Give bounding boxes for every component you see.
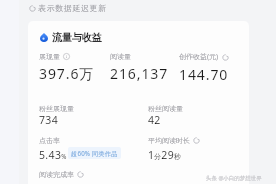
staticText: 头条 @小白的梦想世界 [206,174,262,182]
staticText: 5.43% [39,148,67,162]
button[interactable]: 平均阅读时长 [148,136,200,162]
other: 刷新 [193,137,200,144]
button[interactable]: 粉丝展现量 [39,104,74,127]
button[interactable]: 阅读量 [110,52,169,83]
staticText: 阅读量 [110,52,131,61]
staticText: 点击率 [39,136,60,145]
staticText: 平均阅读时长 [148,136,190,145]
staticText: 超60% 同类作品 [71,149,118,157]
button[interactable]: 粉丝阅读量 [148,104,183,127]
staticText: 42 [148,113,161,127]
staticText: 1分29秒 [148,148,182,162]
staticText: 734 [39,113,59,127]
other: 刷新 [29,5,36,12]
staticText: 展现量 [39,52,60,61]
staticText: 阅读完成率 [39,170,74,179]
staticText: 表示数据延迟更新 [38,3,107,13]
button[interactable]: 刷新 [29,3,107,13]
staticText: 397.6万 [39,64,95,83]
staticText: 216,137 [110,64,169,83]
staticText: 粉丝展现量 [39,104,74,113]
button[interactable]: 展现量 [39,52,95,83]
other: 刷新 [77,171,84,178]
staticText: 流量与收益 [52,31,102,44]
button[interactable]: 创作收益(元) [179,52,229,84]
staticText: 粉丝阅读量 [148,104,183,113]
staticText: 144.70 [179,65,229,84]
other: 刷新 [222,54,229,61]
button[interactable]: 阅读完成率 [39,170,84,179]
button[interactable]: 点击率 [39,136,121,162]
staticText: 创作收益(元) [179,52,219,62]
other: 说明 [63,53,70,60]
